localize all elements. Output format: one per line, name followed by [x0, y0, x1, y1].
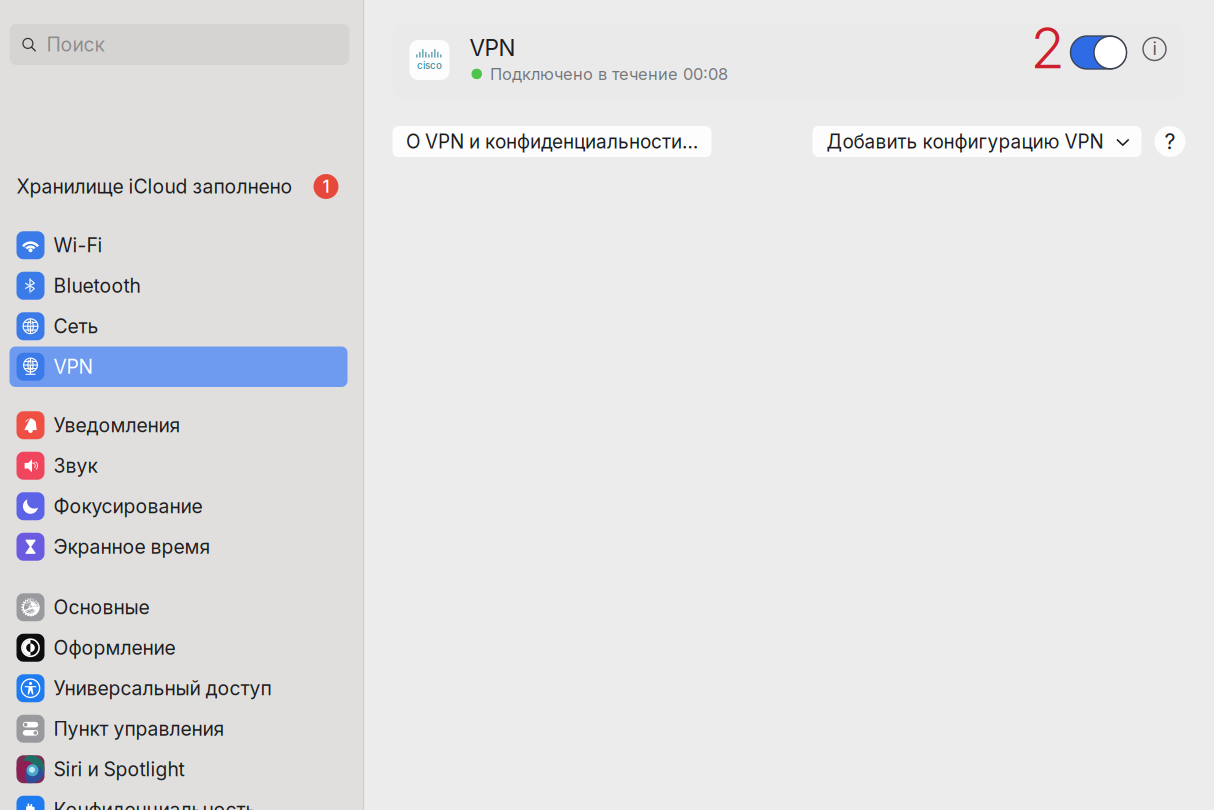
button[interactable]: Оформление: [9, 627, 347, 668]
button[interactable]: Звук: [9, 445, 347, 486]
staticText: Пункт управления: [53, 717, 224, 740]
button[interactable]: VPN: [9, 346, 347, 387]
staticText: Универсальный доступ: [53, 677, 271, 700]
button[interactable]: Фокусирование: [9, 486, 347, 526]
button[interactable]: Пункт управления: [9, 708, 347, 749]
staticText: Оформление: [53, 636, 175, 659]
staticText: Bluetooth: [53, 274, 140, 297]
staticText: ?: [1164, 129, 1175, 154]
button[interactable]: Конфиденциальность: [9, 789, 347, 810]
staticText: 2: [1030, 14, 1064, 82]
staticText: 1: [322, 176, 329, 197]
staticText: Фокусирование: [53, 495, 202, 518]
staticText: О VPN и конфиденциальности…: [406, 130, 698, 153]
staticText: Основные: [53, 596, 149, 619]
button[interactable]: Универсальный доступ: [9, 668, 347, 708]
staticText: Добавить конфигурацию VPN: [826, 130, 1103, 153]
button[interactable]: Основные: [9, 587, 347, 627]
staticText: VPN: [53, 355, 93, 378]
staticText: Сеть: [53, 315, 98, 338]
staticText: Уведомления: [53, 414, 180, 437]
staticText: Поиск: [46, 33, 104, 56]
staticText: i: [1152, 38, 1156, 59]
button[interactable]: Экранное время: [9, 526, 347, 567]
staticText: Конфиденциальность: [53, 798, 256, 810]
staticText: cisco: [417, 59, 442, 71]
staticText: Звук: [53, 454, 97, 477]
button[interactable]: Bluetooth: [9, 265, 347, 306]
button[interactable]: Siri и Spotlight: [9, 749, 347, 789]
staticText: Wi-Fi: [53, 234, 102, 257]
button[interactable]: Сеть: [9, 306, 347, 346]
button[interactable]: Help: [1154, 126, 1185, 157]
button[interactable]: Wi-Fi: [9, 225, 347, 265]
staticText: Экранное время: [53, 535, 210, 558]
button[interactable]: О VPN и конфиденциальности…: [392, 126, 711, 157]
button[interactable]: Хранилище iCloud заполнено: [9, 174, 347, 199]
button[interactable]: Добавить конфигурацию VPN: [812, 126, 1141, 157]
staticText: Хранилище iCloud заполнено: [16, 175, 292, 198]
button[interactable]: VPN on: [1070, 36, 1126, 69]
staticText: Siri и Spotlight: [53, 758, 184, 781]
button[interactable]: Info: [1141, 36, 1167, 62]
button[interactable]: Уведомления: [9, 405, 347, 445]
staticText: Подключено в течение 00:08: [490, 64, 728, 84]
staticText: VPN: [469, 34, 515, 61]
